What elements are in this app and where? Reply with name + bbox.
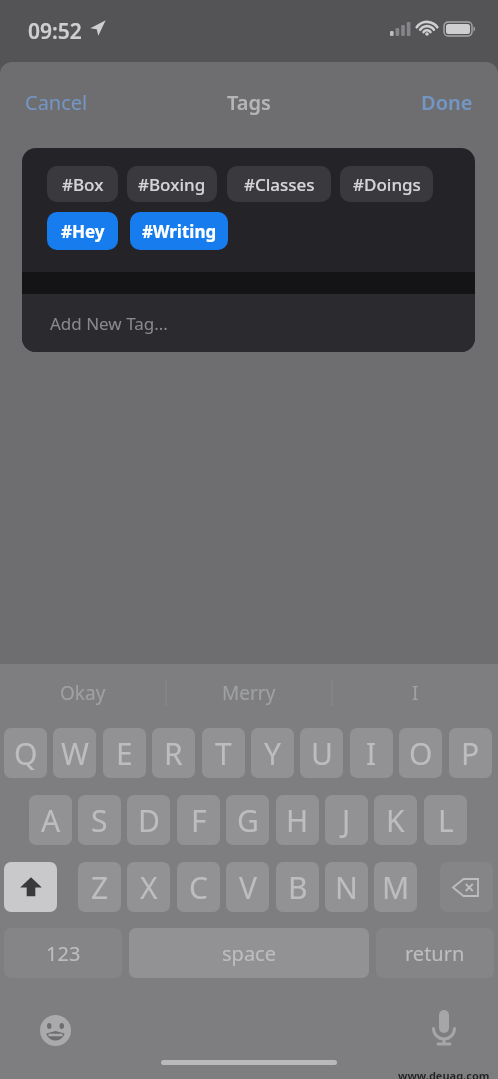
button[interactable]: T: [202, 728, 245, 778]
staticText: #Writing: [142, 220, 217, 243]
staticText: X: [140, 867, 158, 908]
staticText: Y: [264, 733, 281, 774]
button[interactable]: Okay: [0, 670, 166, 716]
button[interactable]: 123: [4, 928, 122, 978]
button[interactable]: X: [127, 862, 170, 912]
staticText: Q: [14, 733, 38, 774]
button[interactable]: D: [127, 795, 170, 845]
staticText: space: [222, 940, 276, 967]
button[interactable]: Q: [4, 728, 47, 778]
button[interactable]: #Hey: [47, 212, 118, 250]
staticText: T: [215, 733, 232, 774]
staticText: A: [41, 800, 61, 841]
staticText: G: [237, 800, 259, 841]
button[interactable]: B: [276, 862, 319, 912]
button[interactable]: #Classes: [227, 166, 331, 202]
staticText: Merry: [222, 680, 276, 706]
button[interactable]: O: [399, 728, 442, 778]
staticText: W: [61, 733, 89, 774]
staticText: Z: [91, 867, 109, 908]
button[interactable]: L: [424, 795, 467, 845]
button[interactable]: space: [129, 928, 369, 978]
staticText: Tags: [227, 89, 271, 116]
staticText: I: [412, 680, 419, 706]
staticText: www.deuaq.com: [398, 1068, 490, 1079]
button[interactable]: A: [29, 795, 72, 845]
staticText: L: [438, 800, 454, 841]
button[interactable]: [424, 1007, 464, 1049]
button[interactable]: V: [226, 862, 269, 912]
staticText: C: [189, 867, 208, 908]
button[interactable]: W: [53, 728, 96, 778]
staticText: #Boxing: [138, 173, 206, 196]
staticText: #Box: [62, 173, 104, 196]
button[interactable]: J: [325, 795, 368, 845]
staticText: K: [386, 800, 405, 841]
button[interactable]: I: [350, 728, 393, 778]
button[interactable]: Z: [78, 862, 121, 912]
button[interactable]: Merry: [166, 670, 332, 716]
staticText: #Doings: [353, 173, 421, 196]
button[interactable]: K: [374, 795, 417, 845]
button[interactable]: [440, 862, 493, 912]
staticText: 123: [46, 940, 81, 967]
button[interactable]: C: [177, 862, 220, 912]
staticText: M: [382, 867, 410, 908]
staticText: F: [191, 800, 207, 841]
button[interactable]: M: [374, 862, 417, 912]
button[interactable]: Y: [251, 728, 294, 778]
button[interactable]: F: [177, 795, 220, 845]
staticText: 09:52: [28, 17, 82, 46]
button[interactable]: U: [300, 728, 343, 778]
staticText: U: [311, 733, 333, 774]
staticText: H: [286, 800, 309, 841]
button[interactable]: [4, 862, 57, 912]
staticText: I: [366, 733, 377, 774]
button[interactable]: S: [78, 795, 121, 845]
staticText: E: [116, 733, 133, 774]
button[interactable]: P: [449, 728, 492, 778]
staticText: Add New Tag...: [50, 312, 168, 335]
staticText: O: [409, 733, 433, 774]
staticText: J: [342, 800, 351, 841]
button[interactable]: Add New Tag...: [22, 294, 475, 352]
staticText: N: [335, 867, 358, 908]
staticText: #Classes: [244, 173, 315, 196]
button[interactable]: Done: [400, 84, 482, 120]
button[interactable]: R: [152, 728, 195, 778]
button[interactable]: E: [103, 728, 146, 778]
staticText: D: [138, 800, 160, 841]
staticText: B: [288, 867, 308, 908]
button[interactable]: [36, 1011, 74, 1049]
staticText: return: [405, 940, 465, 967]
button[interactable]: return: [376, 928, 494, 978]
staticText: V: [239, 867, 257, 908]
button[interactable]: Cancel: [16, 84, 106, 120]
staticText: R: [164, 733, 183, 774]
button[interactable]: H: [276, 795, 319, 845]
button[interactable]: N: [325, 862, 368, 912]
button[interactable]: #Writing: [130, 212, 228, 250]
staticText: P: [461, 733, 480, 774]
button[interactable]: #Box: [47, 166, 118, 202]
staticText: Okay: [60, 680, 106, 706]
staticText: S: [91, 800, 108, 841]
staticText: Done: [421, 89, 473, 116]
staticText: Cancel: [25, 89, 88, 116]
button[interactable]: G: [226, 795, 269, 845]
staticText: #Hey: [61, 220, 105, 243]
button[interactable]: #Boxing: [127, 166, 217, 202]
button[interactable]: #Doings: [340, 166, 433, 202]
